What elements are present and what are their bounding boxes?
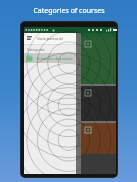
staticText: Categorias	[27, 47, 45, 52]
staticText: Guia patrocini	[37, 36, 64, 41]
button[interactable]: Course tile	[81, 37, 116, 84]
staticText: Categories of courses	[33, 6, 105, 16]
staticText: Encontre dispositiv	[37, 56, 73, 61]
button[interactable]: Course tile	[81, 86, 116, 121]
button[interactable]: Course tile	[81, 123, 116, 154]
button[interactable]: Menu	[24, 33, 76, 44]
other: Menu	[26, 35, 33, 42]
button[interactable]: Categories of courses	[0, 0, 137, 22]
button[interactable]: Encontre dispositiv	[24, 53, 76, 63]
